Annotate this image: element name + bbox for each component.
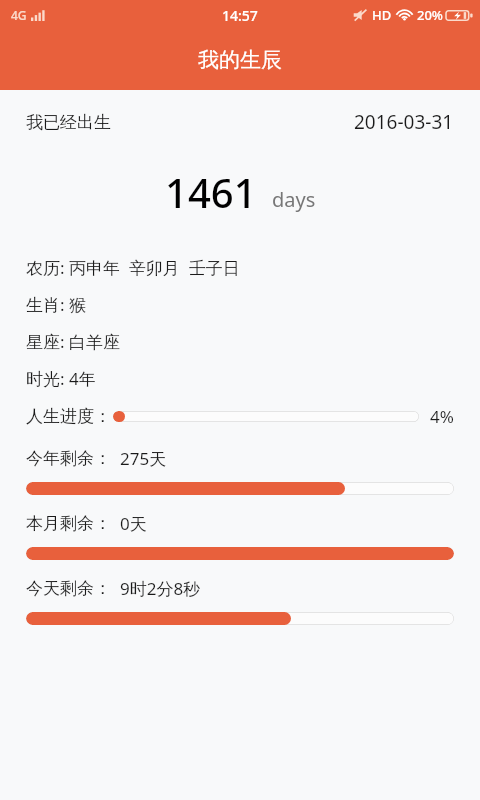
staticText: 14:57 [222, 6, 258, 25]
button[interactable]: 人生进度： [26, 401, 454, 431]
button[interactable]: 今天剩余： [0, 577, 480, 625]
staticText: 生肖: 猴 [26, 293, 86, 316]
button[interactable]: 今年剩余： [0, 447, 480, 495]
staticText: 今年剩余： [26, 448, 111, 469]
staticText: 4% [430, 405, 454, 428]
staticText: 农历: 丙申年 辛卯月 壬子日 [26, 256, 240, 279]
staticText: 4G [11, 7, 27, 23]
button[interactable]: 农历: 丙申年 辛卯月 壬子日 [0, 249, 480, 286]
button[interactable]: 时光: 4年 [0, 360, 480, 397]
staticText: HD [372, 6, 392, 24]
staticText: 本月剩余： [26, 513, 111, 534]
staticText: 20% [417, 6, 443, 24]
button[interactable]: 本月剩余： [0, 512, 480, 560]
staticText: 我的生辰 [198, 47, 282, 73]
staticText: days [272, 186, 316, 213]
staticText: 今天剩余： [26, 578, 111, 599]
button[interactable]: 星座: 白羊座 [0, 323, 480, 360]
staticText: 275天 [120, 447, 167, 470]
staticText: 星座: 白羊座 [26, 330, 120, 353]
staticText: 2016-03-31 [354, 109, 454, 135]
button[interactable]: 生肖: 猴 [0, 286, 480, 323]
staticText: 0天 [120, 512, 147, 535]
staticText: 我已经出生 [26, 112, 111, 133]
staticText: 1461 [165, 165, 257, 219]
staticText: 人生进度： [26, 406, 111, 427]
staticText: 9时2分8秒 [120, 577, 201, 600]
staticText: 时光: 4年 [26, 367, 96, 390]
